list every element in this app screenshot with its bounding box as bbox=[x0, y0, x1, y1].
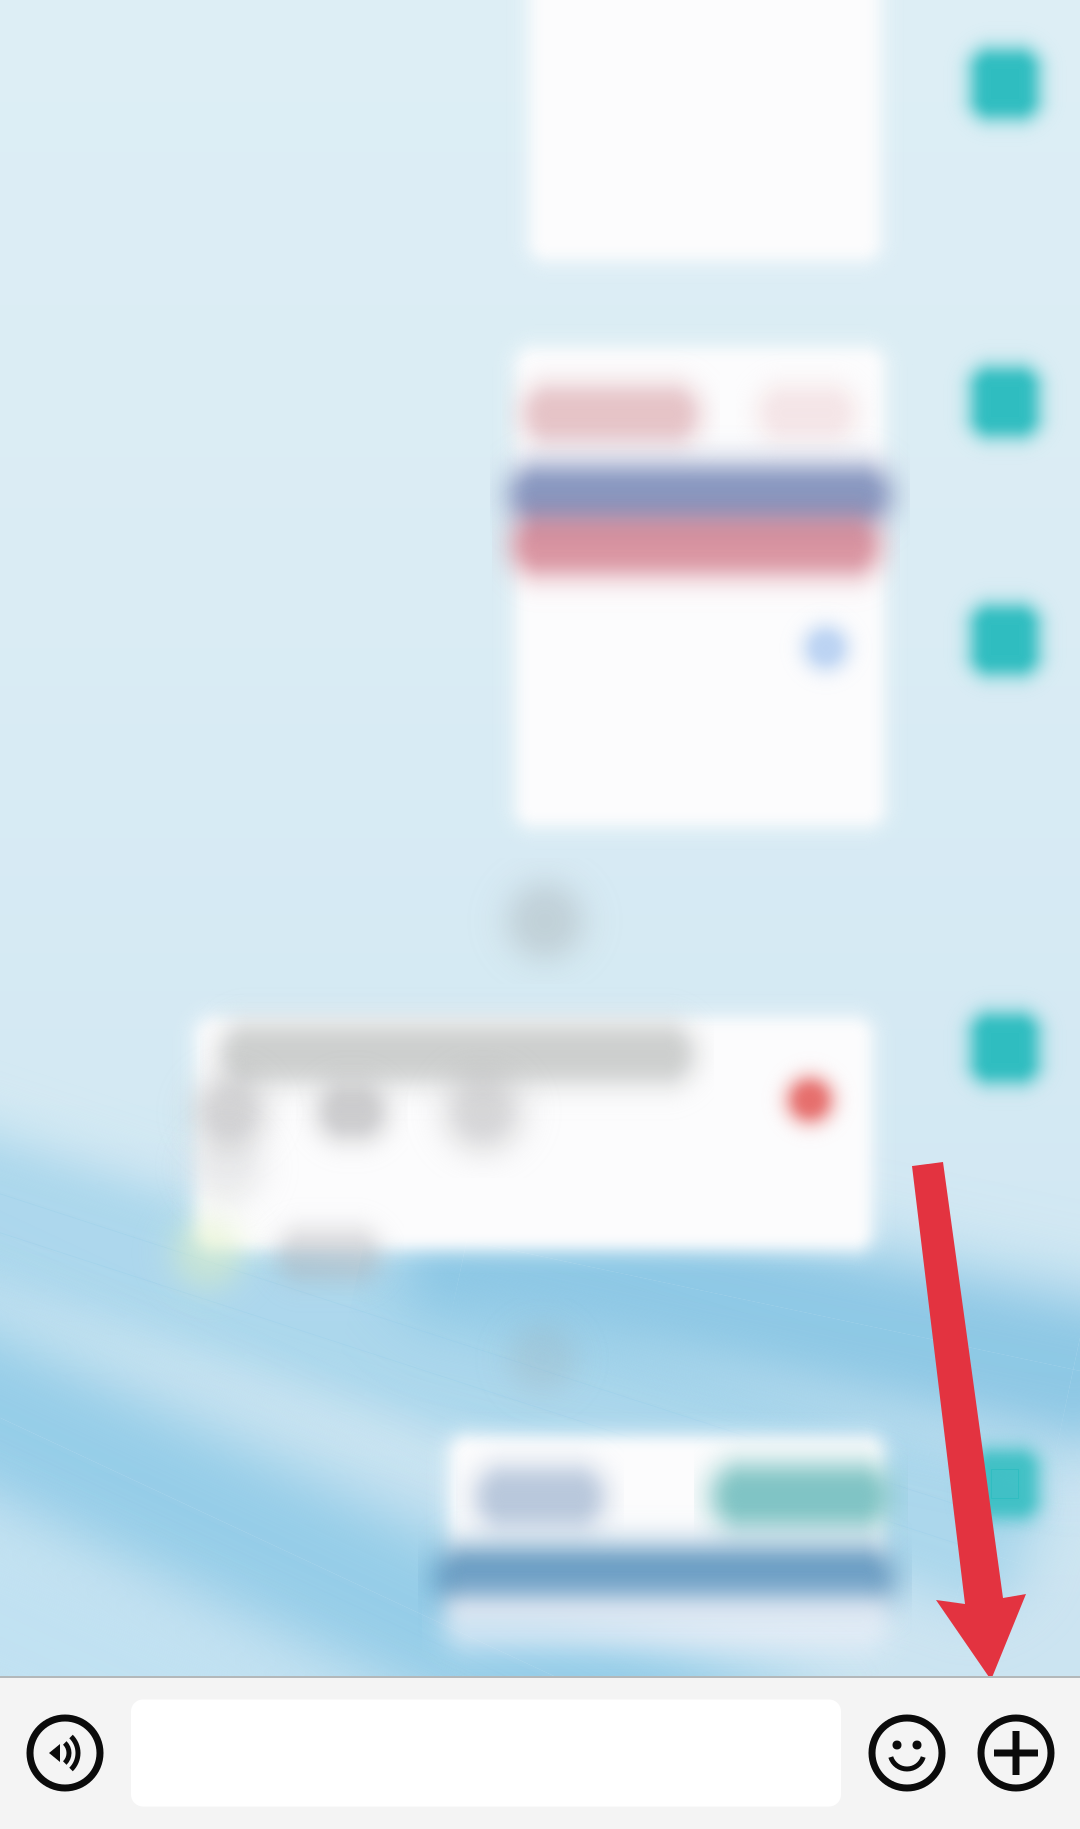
button[interactable]: Emoji bbox=[847, 1693, 967, 1813]
button[interactable]: Voice message bbox=[5, 1693, 125, 1813]
button[interactable]: More bbox=[956, 1693, 1076, 1813]
